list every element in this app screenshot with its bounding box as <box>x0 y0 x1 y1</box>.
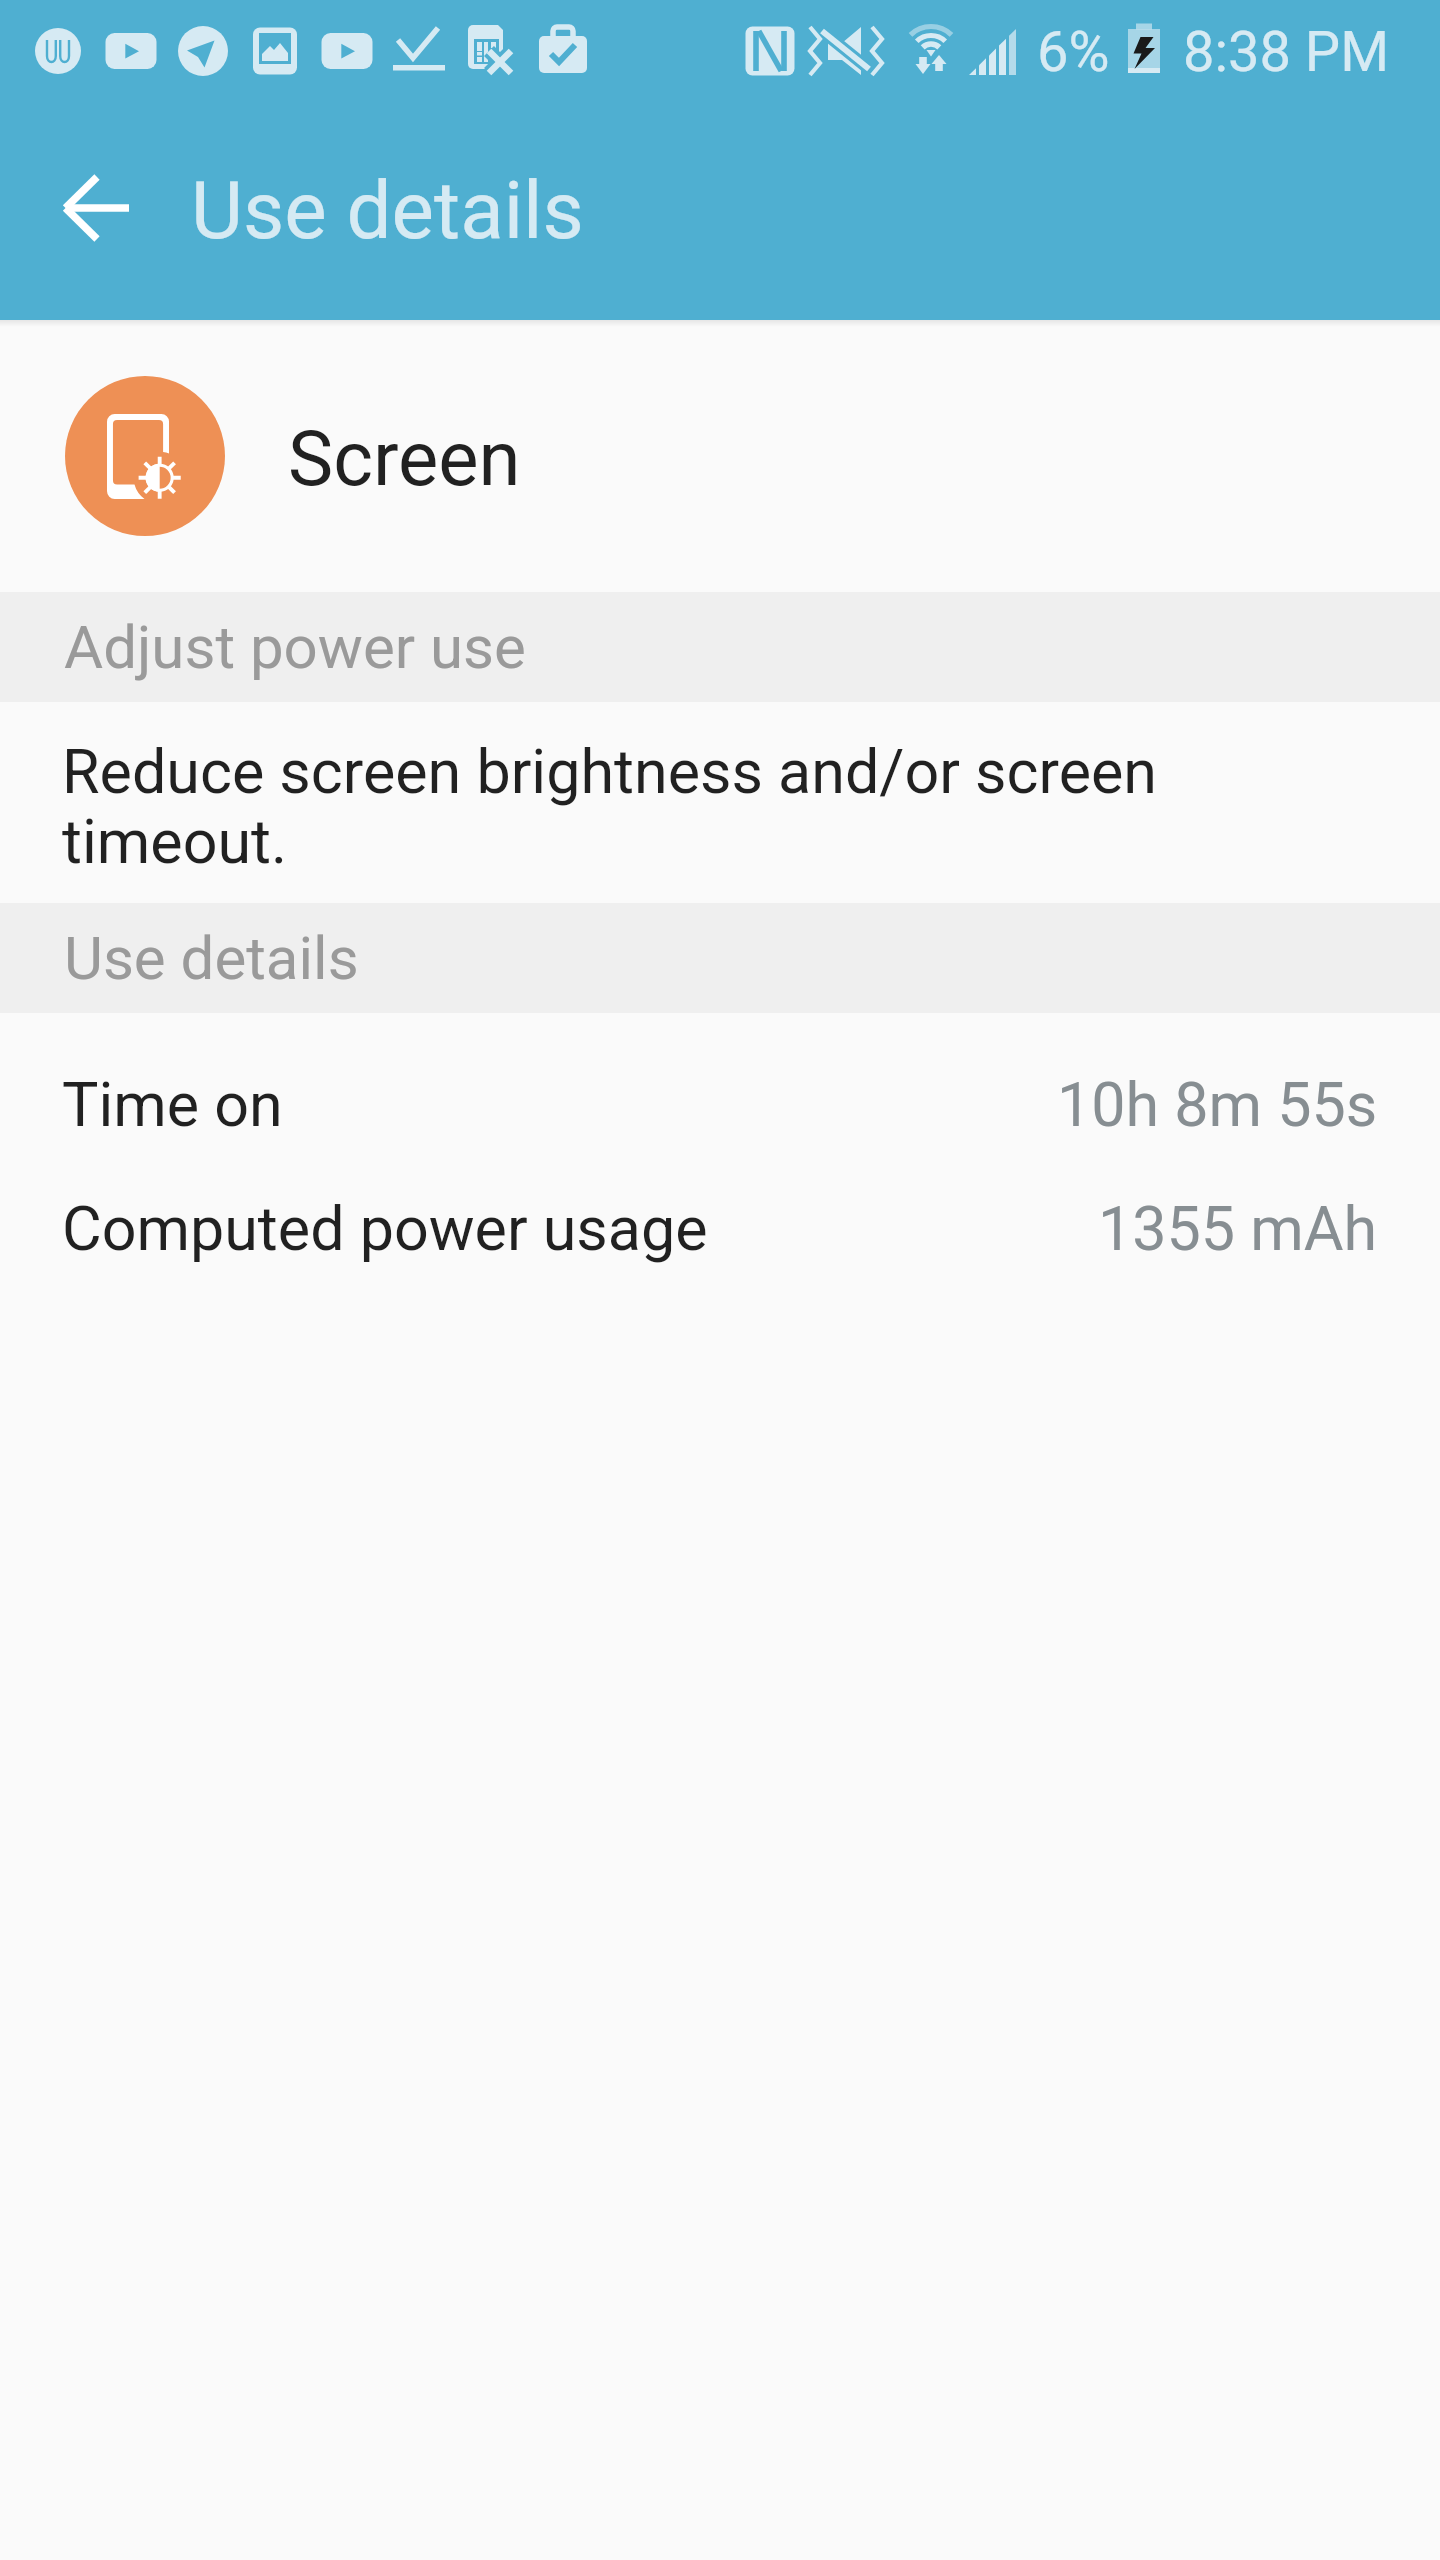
staticText: 10h 8m 55s <box>1057 1069 1378 1140</box>
staticText: 8:38 PM <box>1183 19 1390 85</box>
staticText: Adjust power use <box>64 612 526 682</box>
staticText: Time on <box>62 1069 283 1140</box>
staticText: Use details <box>191 164 584 258</box>
staticText: Screen <box>288 414 521 503</box>
staticText: 1355 mAh <box>1098 1193 1378 1264</box>
staticText: Use details <box>64 923 359 993</box>
button[interactable]: Navigate up <box>37 148 157 268</box>
button[interactable]: Computed power usage <box>0 1166 1440 1290</box>
staticText: Reduce screen brightness and/or screen t… <box>62 736 1210 878</box>
staticText: 6% <box>1037 19 1110 85</box>
staticText: Computed power usage <box>62 1193 708 1264</box>
button[interactable]: Time on <box>0 1042 1440 1166</box>
